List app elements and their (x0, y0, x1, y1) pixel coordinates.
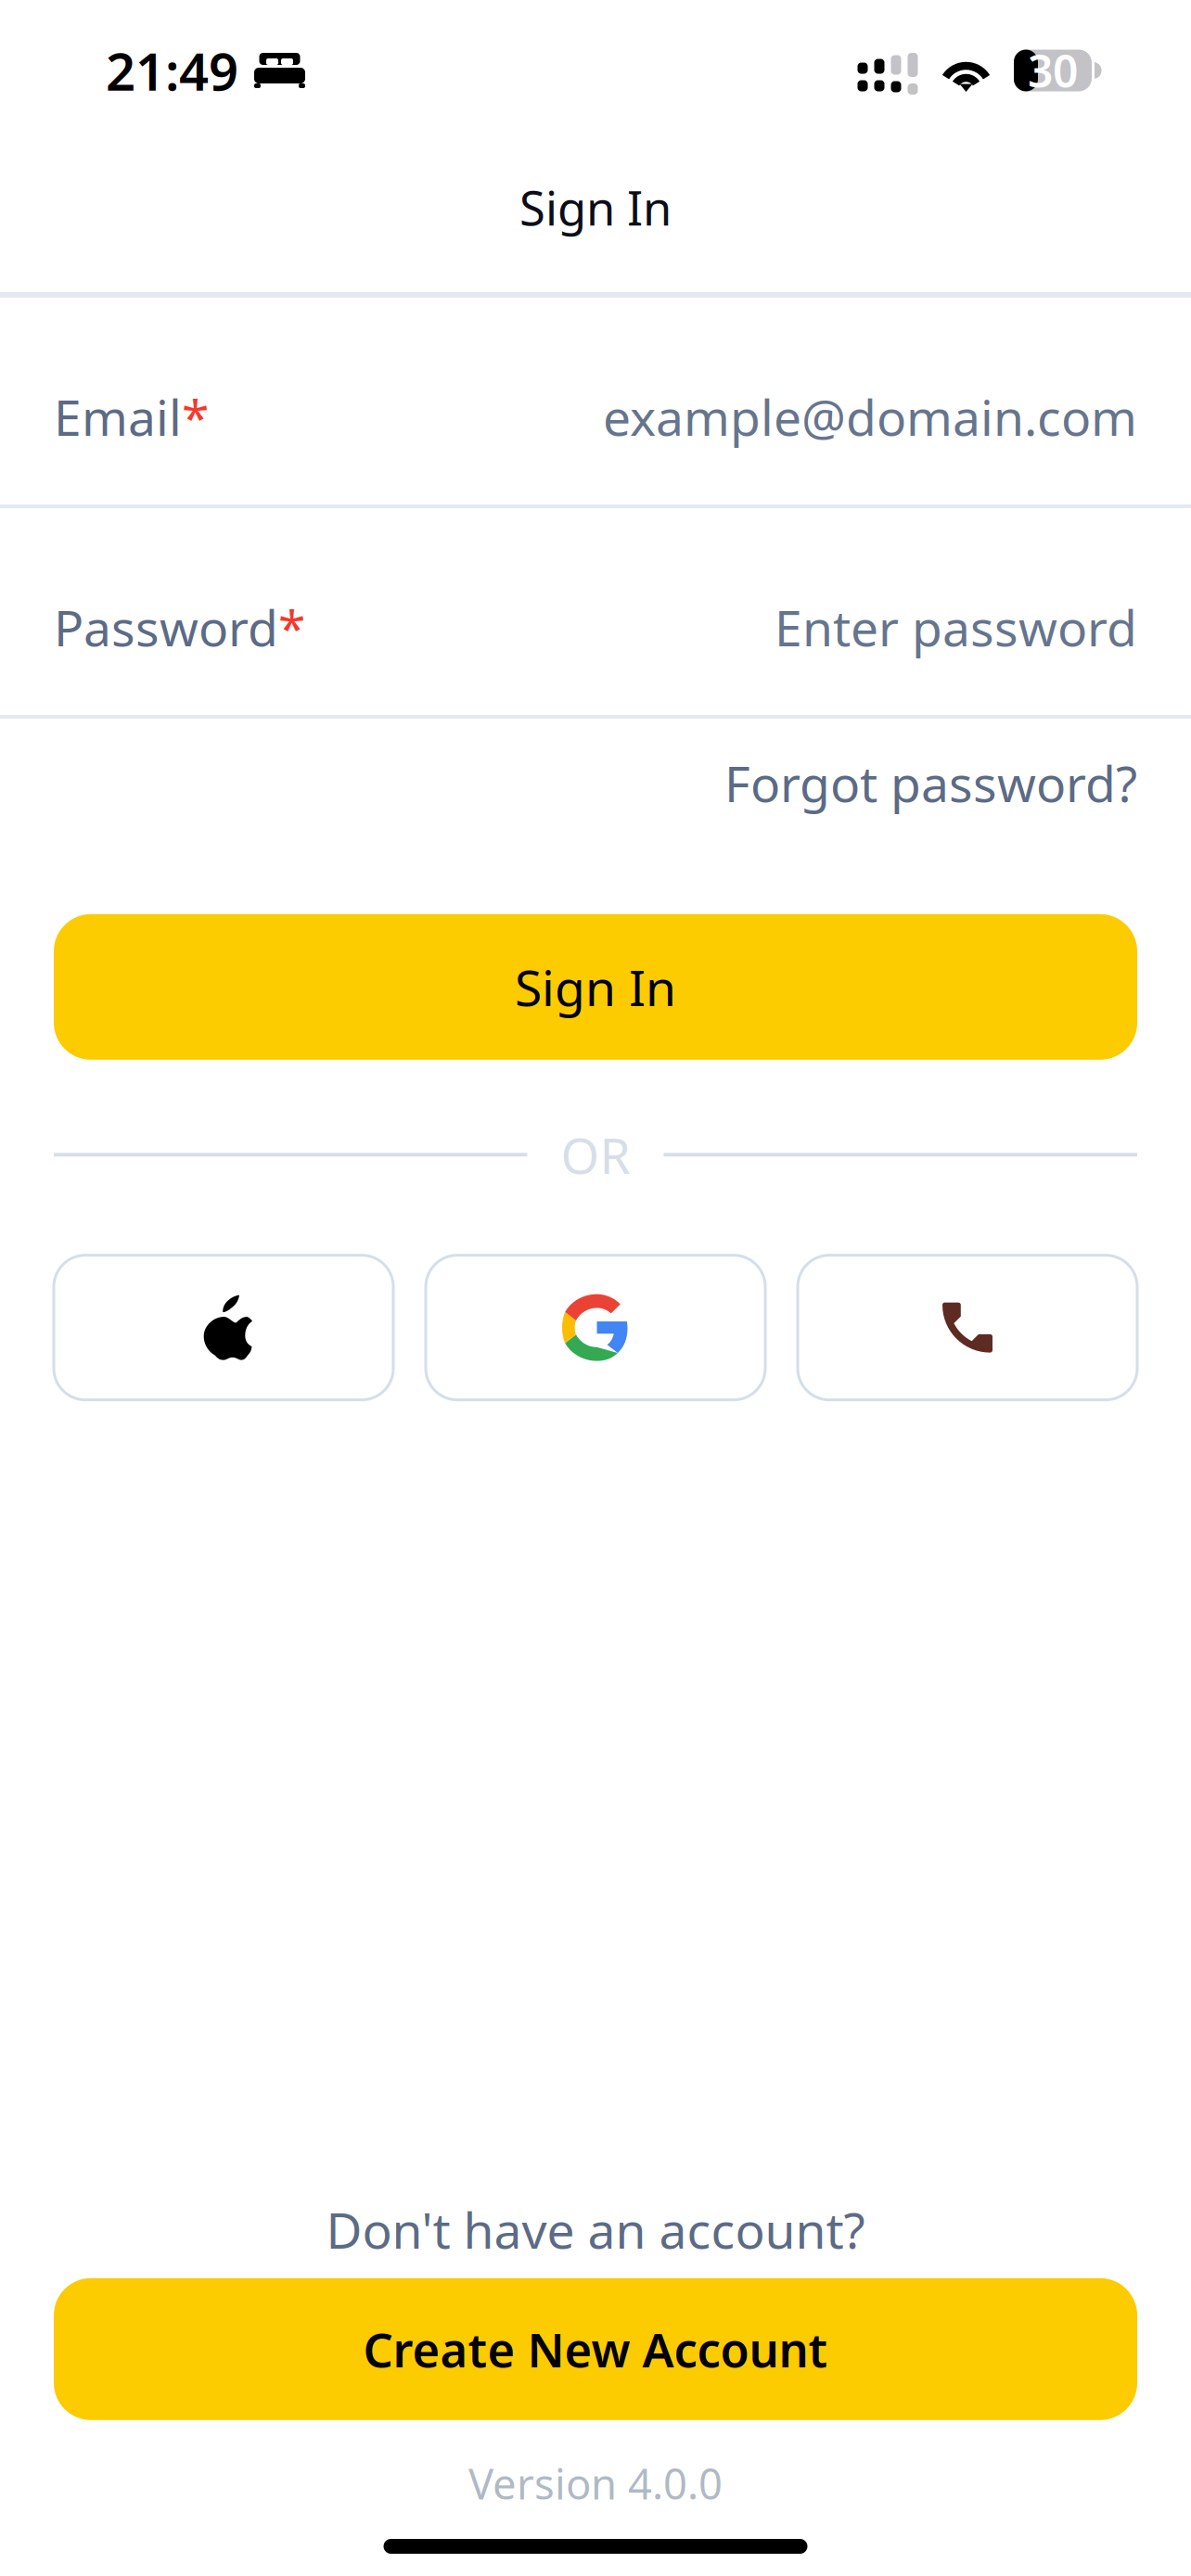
button[interactable]: Sign In (54, 914, 1137, 1060)
staticText: Forgot password? (724, 750, 1137, 816)
staticText: * (182, 384, 209, 450)
staticText: Create New Account (363, 2318, 828, 2380)
staticText: OR (561, 1122, 630, 1187)
button[interactable]: Sign in with phone number (798, 1255, 1137, 1400)
staticText: Email (54, 384, 182, 450)
staticText: 30 (1028, 41, 1078, 100)
button[interactable]: Sign in with Google (426, 1255, 765, 1400)
staticText: example@domain.com (603, 384, 1137, 450)
staticText: Enter password (775, 594, 1137, 660)
staticText: Sign In (519, 176, 672, 238)
button[interactable]: Create New Account (54, 2278, 1137, 2420)
button[interactable]: Sign in with Apple (54, 1255, 393, 1400)
staticText: 21:49 (106, 36, 238, 105)
staticText: Sign In (515, 954, 676, 1020)
button[interactable]: Forgot password? (724, 737, 1137, 829)
staticText: Password (54, 594, 278, 660)
staticText: * (278, 594, 305, 660)
staticText: Version 4.0.0 (468, 2455, 723, 2511)
staticText: Don't have an account? (326, 2197, 865, 2262)
